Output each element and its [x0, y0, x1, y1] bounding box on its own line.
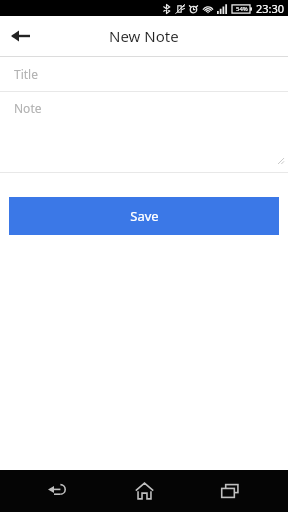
staticText: 54%	[236, 5, 248, 13]
staticText: New Note	[109, 26, 179, 46]
staticText: 23:30	[256, 1, 285, 16]
button[interactable]: Note	[0, 92, 288, 172]
button[interactable]: Title	[0, 57, 288, 91]
button[interactable]: Home	[116, 470, 172, 512]
button[interactable]: Navigate up	[0, 16, 40, 56]
staticText: Save	[130, 207, 159, 225]
staticText: Note	[14, 100, 42, 116]
button[interactable]: Save	[9, 197, 279, 235]
staticText: Title	[14, 66, 38, 82]
button[interactable]: Back	[30, 470, 86, 512]
button[interactable]: Recent apps	[202, 470, 258, 512]
